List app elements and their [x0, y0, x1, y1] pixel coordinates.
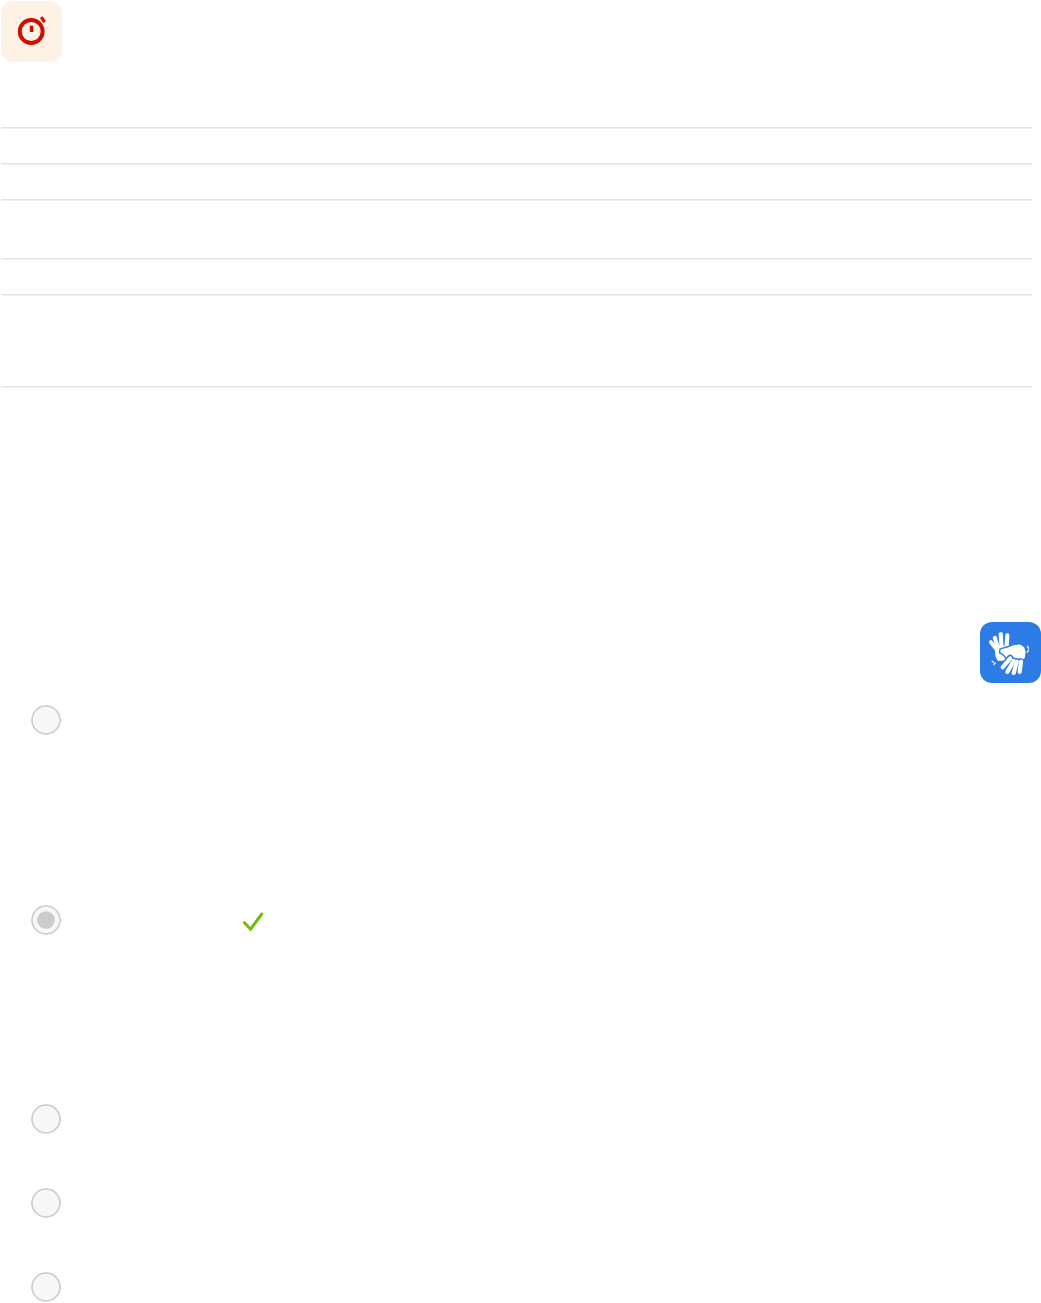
- button[interactable]: Option: [31, 1188, 61, 1218]
- button[interactable]: Selected option: [31, 905, 61, 935]
- button[interactable]: Option: [31, 705, 61, 735]
- button[interactable]: Option: [31, 1104, 61, 1134]
- button[interactable]: Sign language interpreter: [980, 622, 1041, 683]
- button[interactable]: Option: [31, 1272, 61, 1302]
- button[interactable]: Timer: [1, 1, 62, 62]
